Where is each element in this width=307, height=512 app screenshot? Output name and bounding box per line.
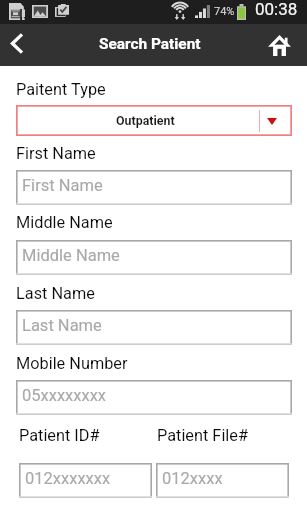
staticText: 012xxxx	[162, 469, 223, 488]
button[interactable]: Back	[0, 24, 34, 66]
staticText: Middle Name	[16, 213, 113, 232]
staticText: 05xxxxxxxx	[22, 386, 107, 405]
staticText: Last Name	[22, 316, 102, 335]
staticText: Patient ID#	[19, 426, 100, 445]
staticText: Patient File#	[157, 426, 248, 445]
button[interactable]: First Name	[16, 170, 292, 205]
staticText: Outpatient	[116, 113, 175, 128]
staticText: Mobile Number	[16, 354, 128, 373]
staticText: Middle Name	[22, 246, 120, 265]
button[interactable]: 012xxxxxxx	[19, 463, 152, 498]
staticText: Search Patient	[99, 35, 201, 53]
staticText: Paitent Type	[16, 80, 106, 99]
staticText: 012xxxxxxx	[25, 469, 111, 488]
button[interactable]: 012xxxx	[156, 463, 289, 498]
staticText: Last Name	[16, 284, 95, 303]
button[interactable]: Home	[265, 24, 293, 66]
staticText: First Name	[16, 144, 96, 163]
button[interactable]: 05xxxxxxxx	[16, 380, 292, 415]
button[interactable]: Last Name	[16, 310, 292, 345]
button[interactable]: Middle Name	[16, 240, 292, 275]
staticText: First Name	[22, 176, 103, 195]
staticText: 00:38	[255, 0, 298, 19]
button[interactable]: Outpatient	[16, 105, 292, 136]
staticText: 74%	[214, 5, 235, 18]
